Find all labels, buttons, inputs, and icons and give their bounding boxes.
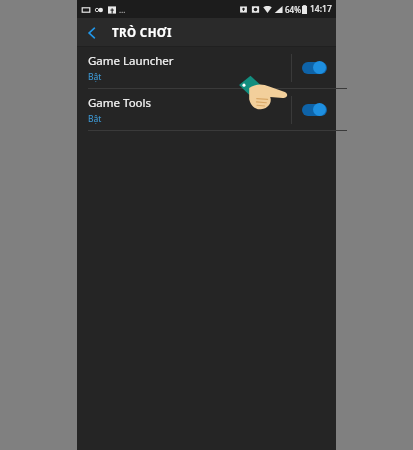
staticText: Game Launcher <box>88 53 174 69</box>
button[interactable]: Game Tools <box>77 89 336 130</box>
button[interactable]: Game Launcher <box>77 47 336 88</box>
staticText: … <box>119 4 126 15</box>
button[interactable]: Back <box>77 18 107 47</box>
staticText: Game Tools <box>88 95 152 111</box>
button[interactable]: Game Tools toggle <box>292 89 336 130</box>
staticText: TRÒ CHƠI <box>112 25 172 41</box>
staticText: Bật <box>88 113 102 125</box>
staticText: 14:17 <box>310 3 332 15</box>
staticText: 64% <box>285 4 301 15</box>
button[interactable]: Game Launcher toggle <box>292 47 336 88</box>
staticText: Bật <box>88 71 102 83</box>
